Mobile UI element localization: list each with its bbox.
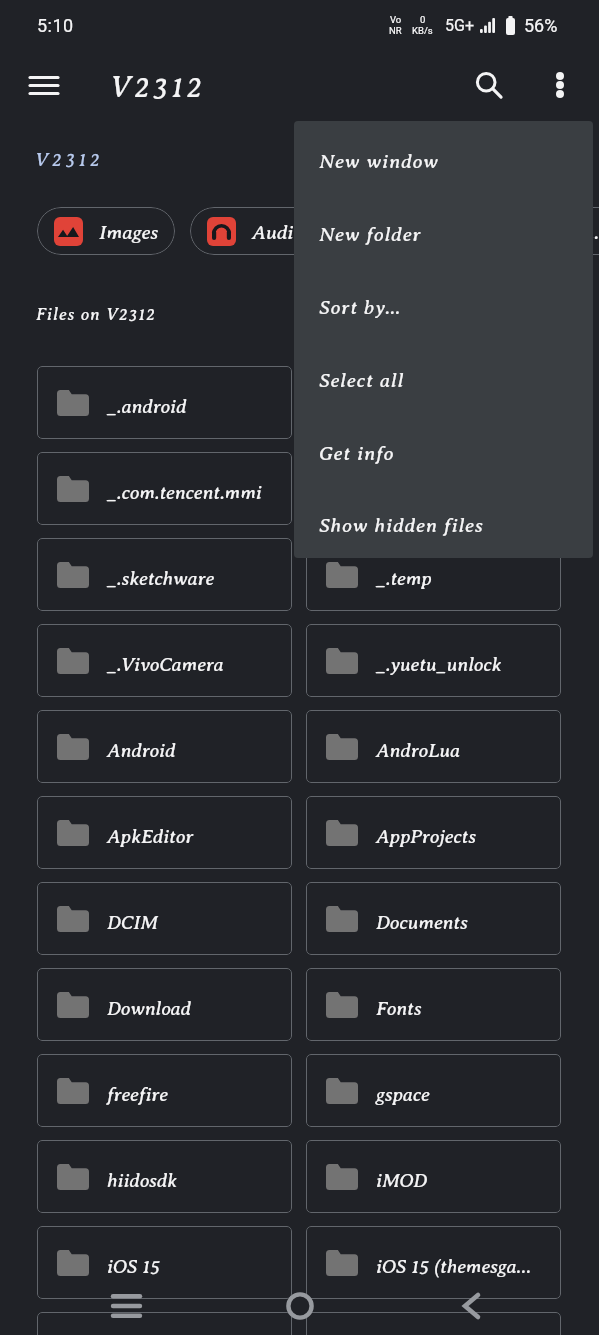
staticText: Audio [252,221,304,244]
button[interactable]: Navigation drawer [23,64,65,106]
staticText: Select all [319,369,405,392]
button[interactable]: Images [37,207,175,255]
staticText: Show hidden files [319,514,484,537]
button[interactable]: New window [294,123,593,196]
button[interactable]: Sort by… [294,269,593,342]
button[interactable]: hiidosdk [37,1140,292,1213]
button[interactable]: Select all [294,342,593,415]
staticText: 0 [420,14,426,25]
staticText: 56% [524,15,558,36]
staticText: iMOD [376,1169,428,1191]
button[interactable]: Recent apps [101,1281,151,1331]
staticText: 5G+ [445,16,474,35]
staticText: Documents [376,911,468,933]
button[interactable]: New folder [294,196,593,269]
button[interactable]: Back [446,1281,496,1331]
staticText: Videos [399,221,456,244]
staticText: _.yuetu_unlock [376,653,502,675]
button[interactable]: Search [467,63,511,107]
button[interactable]: _.VivoCamera [37,624,292,697]
button[interactable]: freefire [37,1054,292,1127]
staticText: Get info [319,442,395,465]
button[interactable]: _.com.tencent.mmi [37,452,292,525]
staticText: DCIM [107,911,158,933]
button[interactable]: _.config [306,366,561,439]
staticText: Download [107,997,191,1019]
button[interactable]: Home [275,1281,325,1331]
button[interactable]: Download [37,968,292,1041]
staticText: iOS 15 [107,1255,160,1277]
staticText: Documents [551,221,599,244]
button[interactable]: LuaJava [37,1312,292,1335]
staticText: Files on V2312 [36,305,156,324]
staticText: hiidosdk [107,1169,178,1191]
staticText: iOS 15 (themesga… [376,1255,531,1277]
button[interactable]: iMOD [306,1140,561,1213]
button[interactable]: Documents [306,882,561,955]
button[interactable]: _.dataline [306,452,561,525]
staticText: New folder [319,223,422,246]
button[interactable]: AppProjects [306,796,561,869]
staticText: V2312 [35,149,104,171]
staticText: _.sketchware [107,567,214,589]
staticText: AppProjects [376,825,476,847]
button[interactable]: Android [37,710,292,783]
button[interactable]: Get info [294,415,593,488]
button[interactable]: ApkEditor [37,796,292,869]
staticText: V2312 [110,70,205,104]
staticText: gspace [376,1083,430,1105]
staticText: AndroLua [376,739,460,761]
staticText: 5:10 [37,15,74,36]
button[interactable]: _.sketchware [37,538,292,611]
staticText: _.VivoCamera [107,653,224,675]
staticText: Fonts [376,997,422,1019]
staticText: Images [99,221,158,244]
button[interactable]: AndroLua [306,710,561,783]
button[interactable]: _.temp [306,538,561,611]
button[interactable]: More options [538,63,582,107]
staticText: _.com.tencent.mmi [107,481,262,503]
staticText: Vo [390,14,402,25]
staticText: freefire [107,1083,168,1105]
button[interactable]: Audio [190,207,321,255]
button[interactable]: Fonts [306,968,561,1041]
staticText: New window [319,150,439,173]
button[interactable]: _.yuetu_unlock [306,624,561,697]
button[interactable]: gspace [306,1054,561,1127]
staticText: _.temp [376,567,432,589]
button[interactable]: Documents [489,207,599,255]
staticText: ApkEditor [107,825,194,847]
button[interactable]: iOS 15 [37,1226,292,1299]
staticText: Android [107,739,176,761]
button[interactable]: Videos [337,207,473,255]
button[interactable]: _.android [37,366,292,439]
button[interactable]: MIUI [306,1312,561,1335]
staticText: KB/s [412,25,433,36]
staticText: _.android [107,395,187,417]
staticText: Sort by… [319,296,402,319]
staticText: NR [389,25,402,36]
button[interactable]: iOS 15 (themesga… [306,1226,561,1299]
button[interactable]: DCIM [37,882,292,955]
button[interactable]: Show hidden files [294,488,593,558]
